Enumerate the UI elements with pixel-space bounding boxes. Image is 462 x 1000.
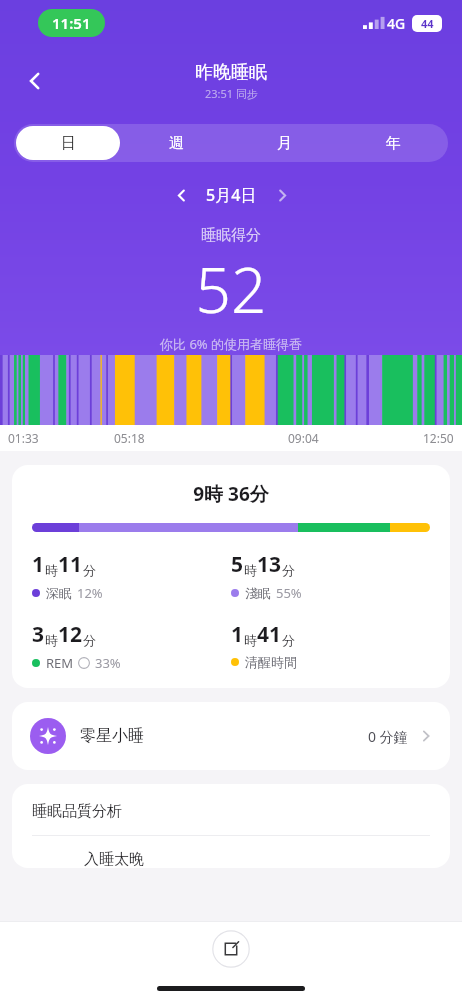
staticText: 9時 36分 <box>32 481 430 507</box>
button[interactable]: 年 <box>341 126 446 160</box>
button[interactable]: 零星小睡 <box>12 702 450 770</box>
button[interactable]: 週 <box>124 126 228 160</box>
staticText: 13 <box>257 550 282 579</box>
staticText: 分 <box>83 632 96 648</box>
staticText: 09:04 <box>288 430 319 446</box>
staticText: 01:33 <box>8 430 39 446</box>
staticText: 年 <box>386 134 401 153</box>
staticText: 23:51 同步 <box>205 86 258 101</box>
staticText: 分 <box>282 632 295 648</box>
staticText: 12 <box>58 620 83 649</box>
staticText: 4G <box>387 14 406 33</box>
staticText: 12:50 <box>423 430 454 446</box>
staticText: 5 <box>231 550 244 579</box>
staticText: 0 分鐘 <box>368 727 408 746</box>
staticText: 52 <box>0 247 462 331</box>
staticText: 5月4日 <box>206 184 257 206</box>
staticText: 55% <box>276 584 302 602</box>
staticText: 1 <box>231 620 244 649</box>
staticText: 昨晚睡眠 <box>195 61 267 84</box>
staticText: 1 <box>32 550 45 579</box>
staticText: 睡眠品質分析 <box>32 802 122 821</box>
staticText: 週 <box>169 134 184 153</box>
staticText: 清醒時間 <box>245 654 297 670</box>
staticText: 你比 6% 的使用者睡得香 <box>0 335 462 353</box>
staticText: 零星小睡 <box>80 726 144 746</box>
button[interactable]: 月 <box>232 126 337 160</box>
staticText: 05:18 <box>114 430 145 446</box>
staticText: 深眠 <box>46 585 72 601</box>
staticText: 11:51 <box>52 13 91 33</box>
staticText: 入睡太晚 <box>84 850 144 868</box>
staticText: 日 <box>61 134 76 153</box>
staticText: 時 <box>244 562 257 578</box>
button[interactable]: 日 <box>16 126 120 160</box>
staticText: 時 <box>244 632 257 648</box>
staticText: 睡眠得分 <box>0 226 462 245</box>
staticText: 41 <box>257 620 282 649</box>
staticText: 月 <box>277 134 292 153</box>
button[interactable]: Back <box>14 60 56 102</box>
button[interactable]: Next day <box>265 178 299 212</box>
staticText: 分 <box>83 562 96 578</box>
staticText: 時 <box>45 632 58 648</box>
button[interactable]: 9時 36分 <box>12 465 450 688</box>
button[interactable]: Edit <box>210 928 252 970</box>
button[interactable]: 睡眠品質分析 <box>12 784 450 868</box>
staticText: 分 <box>282 562 295 578</box>
button[interactable]: Previous day <box>164 178 198 212</box>
staticText: 12% <box>77 584 103 602</box>
staticText: REM <box>46 654 74 672</box>
staticText: 33% <box>95 654 121 672</box>
staticText: 11 <box>58 550 83 579</box>
staticText: 淺眠 <box>245 585 271 601</box>
staticText: 3 <box>32 620 45 649</box>
staticText: 時 <box>45 562 58 578</box>
staticText: 44 <box>421 16 434 31</box>
